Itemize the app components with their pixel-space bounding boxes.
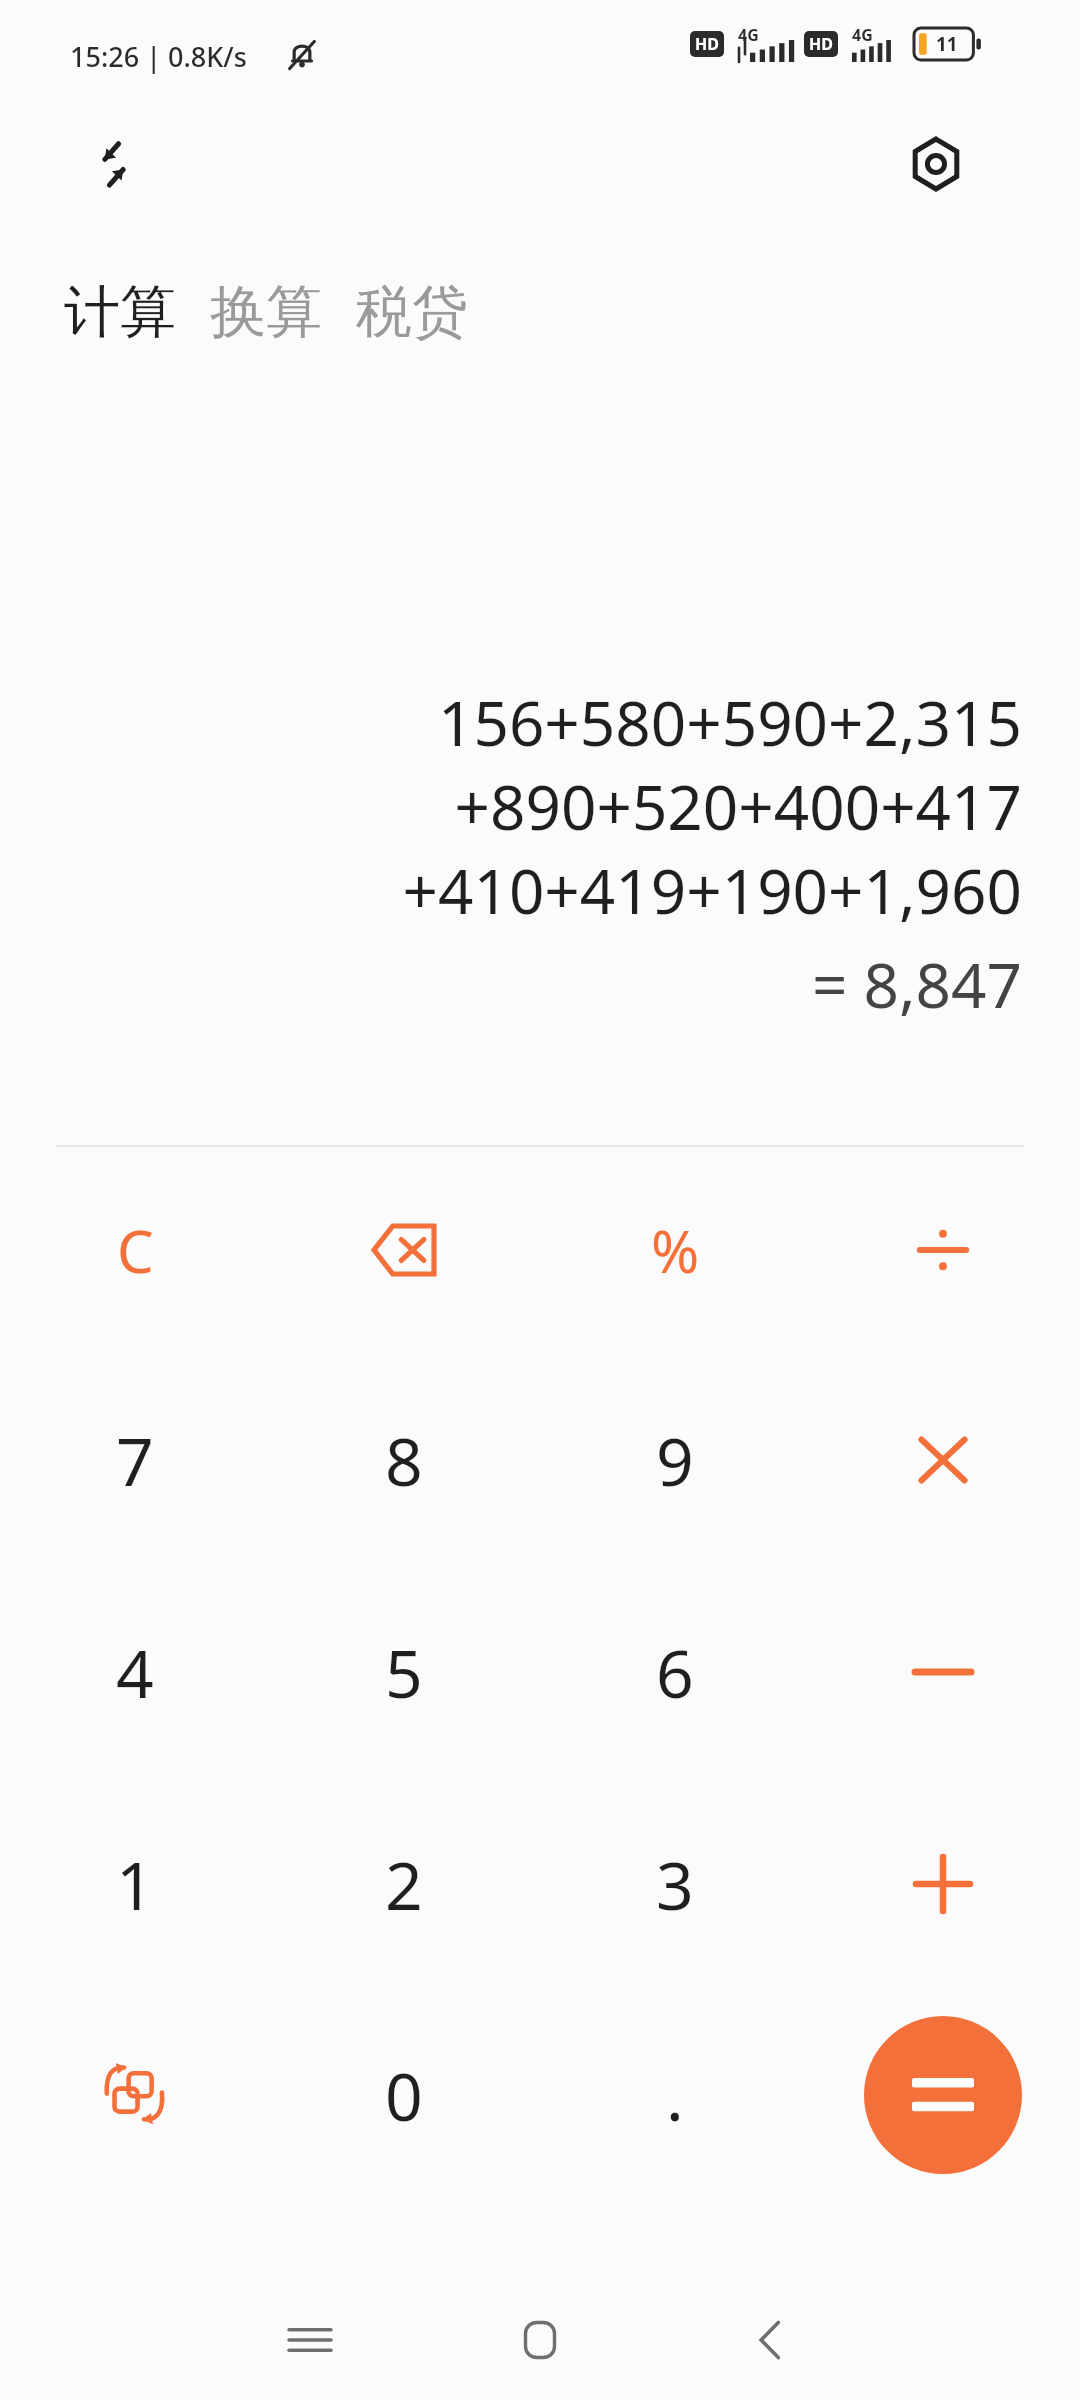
staticText: 换算: [210, 277, 322, 348]
staticText: 15:26 | 0.8K/s: [70, 38, 247, 75]
button[interactable]: 税贷: [352, 269, 472, 356]
button[interactable]: Collapse: [78, 128, 150, 200]
button[interactable]: Recents: [255, 2300, 365, 2380]
staticText: 2: [385, 1839, 423, 1929]
staticText: 1: [116, 1839, 154, 1929]
staticText: 4G: [738, 24, 759, 46]
staticText: 5: [385, 1627, 423, 1717]
staticText: 税贷: [356, 277, 468, 348]
staticText: 4: [116, 1627, 154, 1717]
button[interactable]: Home: [485, 2300, 595, 2380]
button[interactable]: 5: [279, 1582, 529, 1762]
staticText: 4G: [852, 24, 873, 46]
staticText: 3: [656, 1839, 694, 1929]
button[interactable]: Plus: [818, 1794, 1068, 1974]
button[interactable]: 7: [10, 1370, 260, 1550]
staticText: 9: [656, 1415, 694, 1505]
button[interactable]: Equals: [864, 2016, 1022, 2174]
button[interactable]: Minus: [818, 1582, 1068, 1762]
button[interactable]: 计算: [60, 269, 180, 356]
button[interactable]: 0: [279, 2005, 529, 2185]
button[interactable]: .: [550, 2005, 800, 2185]
staticText: %: [651, 1211, 700, 1290]
staticText: 6: [656, 1627, 694, 1717]
staticText: 0: [385, 2050, 423, 2140]
button[interactable]: 4: [10, 1582, 260, 1762]
staticText: 计算: [64, 277, 176, 348]
staticText: HD: [695, 33, 719, 55]
button[interactable]: C: [10, 1160, 260, 1340]
button[interactable]: Divide: [818, 1160, 1068, 1340]
staticText: 7: [116, 1415, 154, 1505]
button[interactable]: 2: [279, 1794, 529, 1974]
button[interactable]: 8: [279, 1370, 529, 1550]
button[interactable]: 6: [550, 1582, 800, 1762]
button[interactable]: 1: [10, 1794, 260, 1974]
staticText: 156+580+590+2,315: [437, 680, 1022, 764]
button[interactable]: Backspace: [279, 1160, 529, 1340]
button[interactable]: 3: [550, 1794, 800, 1974]
staticText: HD: [809, 33, 833, 55]
button[interactable]: Settings: [892, 120, 980, 208]
staticText: .: [666, 2050, 684, 2140]
staticText: 11: [936, 31, 958, 57]
button[interactable]: %: [550, 1160, 800, 1340]
staticText: C: [117, 1211, 154, 1290]
button[interactable]: 换算: [206, 269, 326, 356]
staticText: 8: [385, 1415, 423, 1505]
staticText: = 8,847: [811, 942, 1022, 1026]
button[interactable]: Unit convert: [10, 2005, 260, 2185]
button[interactable]: Multiply: [818, 1370, 1068, 1550]
staticText: +890+520+400+417: [454, 764, 1022, 848]
button[interactable]: Back: [715, 2300, 825, 2380]
button[interactable]: 9: [550, 1370, 800, 1550]
staticText: +410+419+190+1,960: [402, 848, 1022, 932]
